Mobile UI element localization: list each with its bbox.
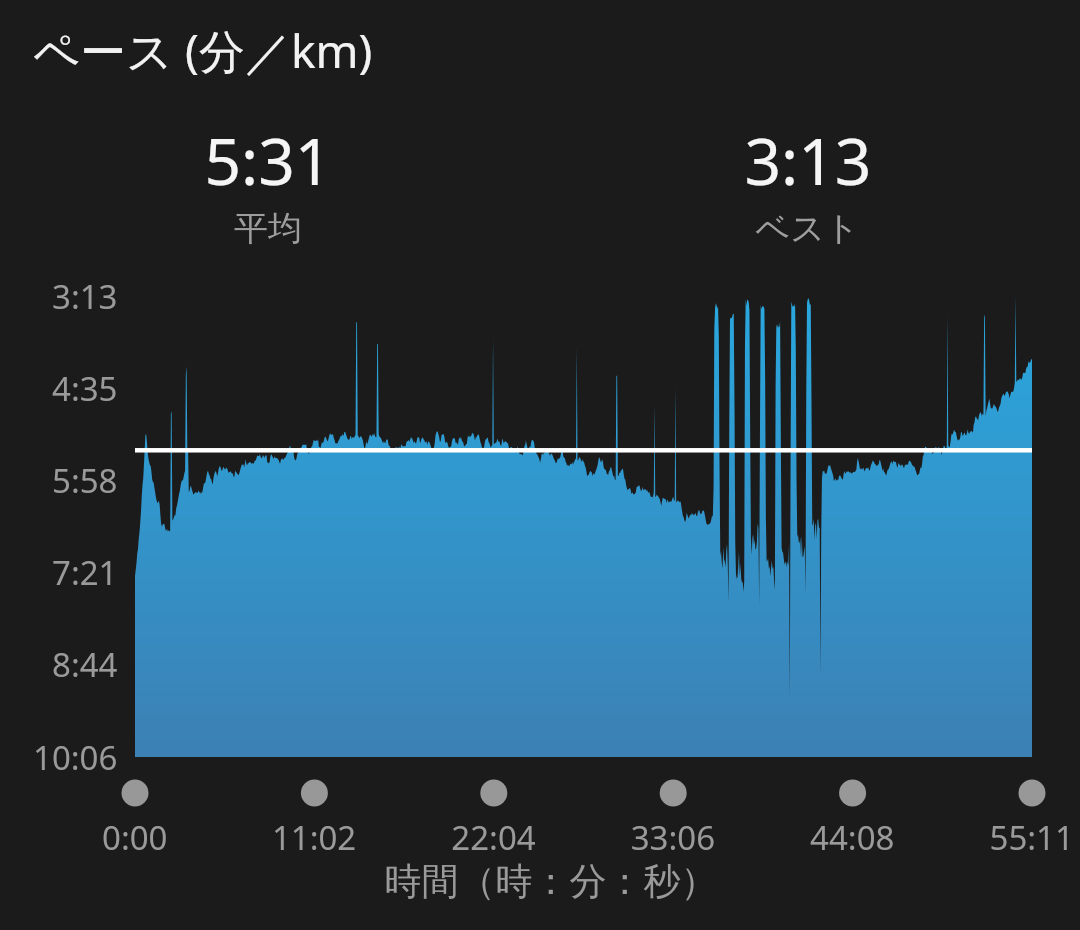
button[interactable]: Pace chart [0, 0, 1080, 930]
